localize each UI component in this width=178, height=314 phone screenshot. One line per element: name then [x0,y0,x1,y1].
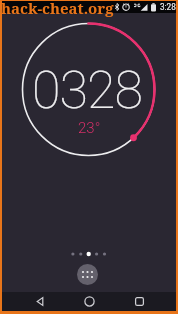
staticText: hack-cheat.org [1,0,114,18]
staticText: 3:28 [160,2,176,12]
staticText: 0328 [32,60,142,114]
button[interactable] [77,264,98,285]
button[interactable] [131,292,148,311]
button[interactable] [32,292,49,311]
button[interactable] [80,292,98,311]
staticText: 23° [78,119,101,137]
